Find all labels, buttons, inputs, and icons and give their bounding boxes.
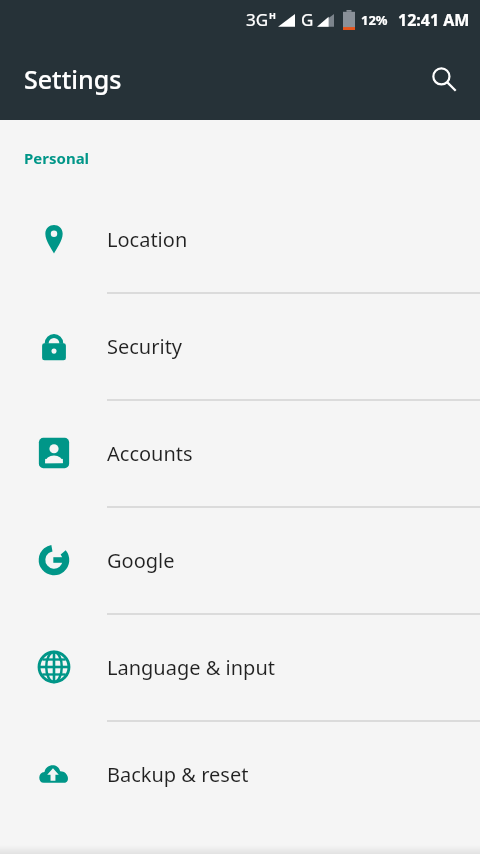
- staticText: Personal: [24, 148, 90, 168]
- button[interactable]: Backup & reset: [0, 747, 480, 854]
- button[interactable]: Language & input: [0, 640, 480, 747]
- button[interactable]: Search: [418, 53, 470, 105]
- button[interactable]: Accounts: [0, 426, 480, 533]
- staticText: Location: [107, 226, 188, 253]
- button[interactable]: Google: [0, 533, 480, 640]
- button[interactable]: Security: [0, 319, 480, 426]
- staticText: Google: [107, 547, 175, 574]
- staticText: 3G: [246, 8, 269, 31]
- staticText: H: [269, 9, 276, 21]
- staticText: 12%: [361, 11, 388, 29]
- staticText: Security: [107, 333, 183, 360]
- staticText: Accounts: [107, 440, 193, 467]
- staticText: Language & input: [107, 654, 275, 681]
- staticText: Backup & reset: [107, 761, 249, 788]
- staticText: 12:41 AM: [398, 9, 470, 31]
- button[interactable]: Location: [0, 212, 480, 319]
- staticText: G: [301, 8, 314, 31]
- staticText: Settings: [24, 62, 122, 96]
